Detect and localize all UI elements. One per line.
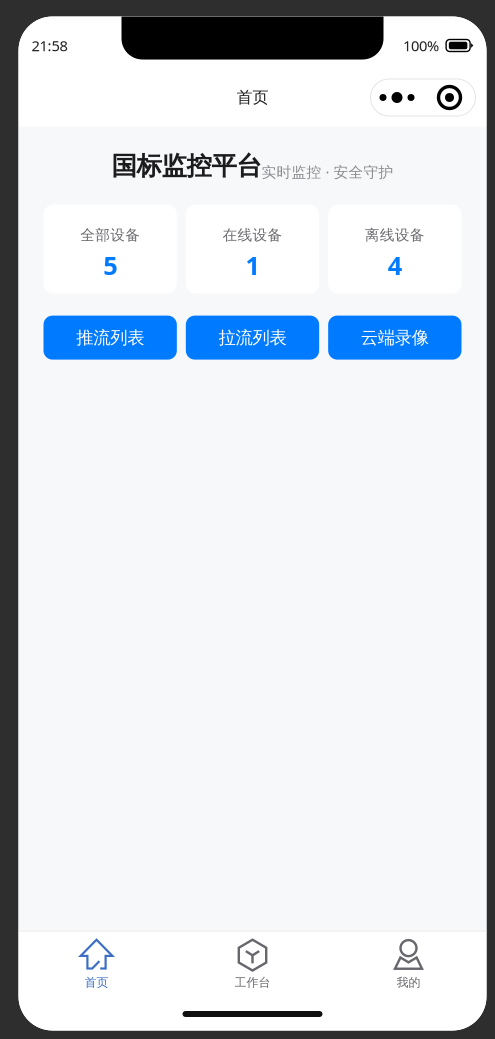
staticText: 国标监控平台	[111, 150, 261, 182]
staticText: 工作台	[234, 975, 270, 990]
button[interactable]: 拉流列表	[186, 316, 319, 360]
staticText: 全部设备	[80, 226, 140, 244]
staticText: 推流列表	[76, 327, 144, 348]
staticText: 100%	[403, 36, 439, 55]
staticText: 云端录像	[361, 327, 429, 348]
staticText: 1	[245, 248, 259, 282]
button[interactable]: More options	[370, 79, 475, 116]
staticText: 拉流列表	[218, 327, 286, 348]
staticText: 我的	[396, 975, 420, 990]
button[interactable]: 首页	[18, 931, 174, 997]
staticText: 实时监控 · 安全守护	[261, 162, 393, 182]
button[interactable]: 工作台	[174, 931, 330, 997]
button[interactable]: 推流列表	[43, 316, 177, 360]
staticText: 5	[103, 248, 117, 282]
staticText: 在线设备	[222, 226, 282, 244]
staticText: 首页	[236, 88, 268, 107]
staticText: 离线设备	[365, 226, 425, 244]
staticText: 21:58	[31, 36, 67, 55]
button[interactable]: 我的	[330, 931, 486, 997]
staticText: 首页	[84, 975, 108, 990]
button[interactable]: 云端录像	[328, 316, 461, 360]
staticText: 4	[388, 248, 402, 282]
